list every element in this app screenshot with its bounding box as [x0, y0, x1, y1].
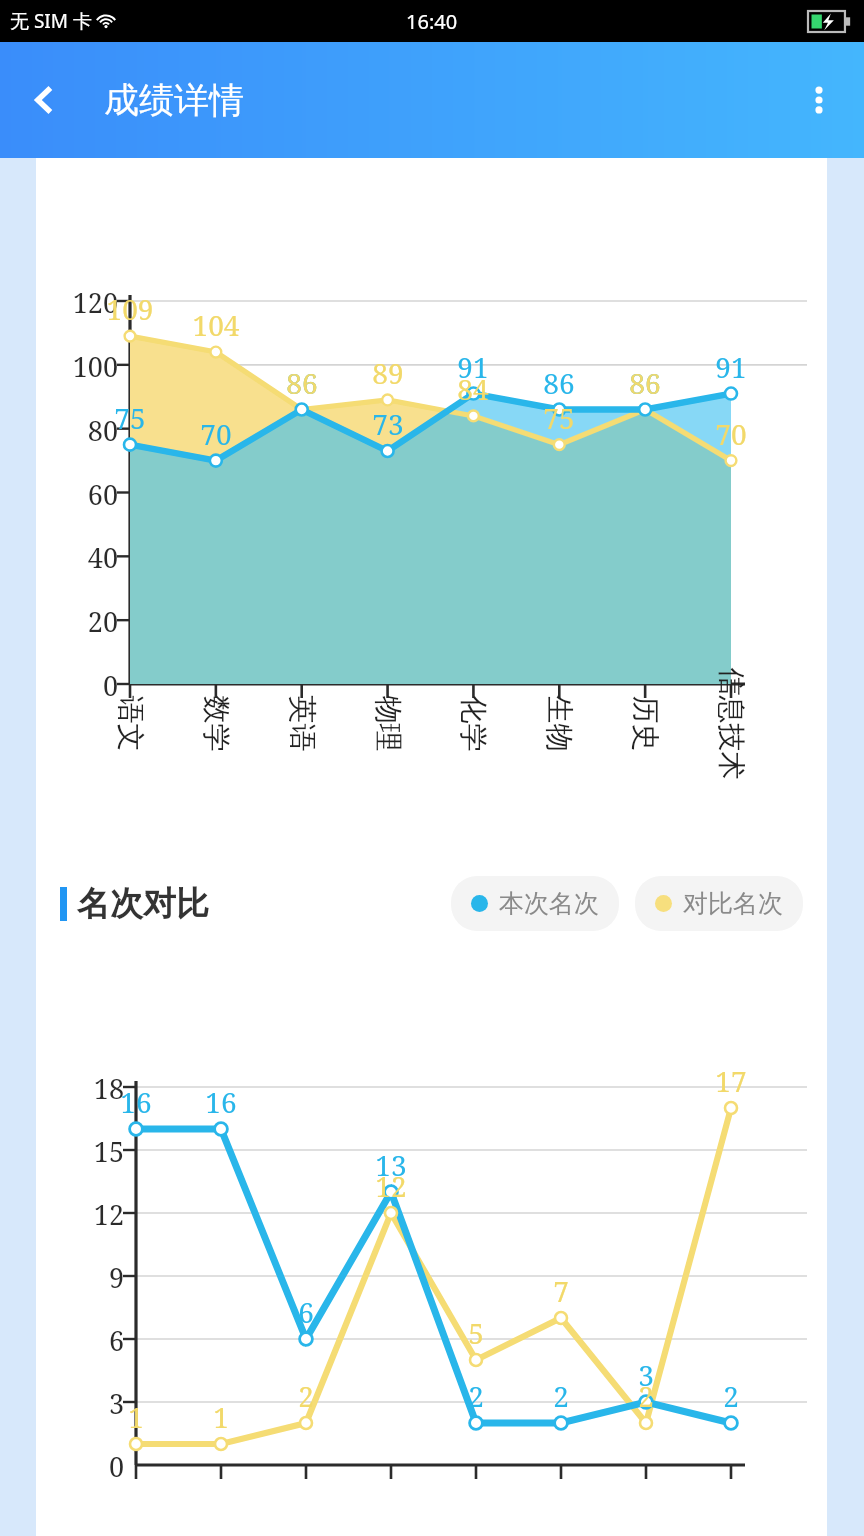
button[interactable]: More options	[788, 69, 850, 131]
button[interactable]: 对比名次	[635, 876, 803, 931]
staticText: 0	[60, 1448, 124, 1485]
staticText: 91	[443, 348, 503, 386]
staticText: 6	[276, 1293, 336, 1331]
staticText: 12	[60, 1196, 124, 1233]
staticText: 89	[358, 354, 418, 392]
staticText: 18	[60, 1070, 124, 1107]
staticText: 对比名次	[683, 888, 783, 919]
staticText: 100	[56, 348, 118, 385]
staticText: 本次名次	[499, 888, 599, 919]
staticText: 2	[446, 1377, 506, 1415]
staticText: 名次对比	[77, 883, 209, 925]
staticText: 信息技术	[713, 667, 748, 779]
staticText: 0	[56, 667, 118, 704]
staticText: 70	[186, 415, 246, 453]
staticText: 17	[701, 1062, 761, 1100]
staticText: 120	[56, 284, 118, 321]
staticText: 73	[358, 405, 418, 443]
staticText: 15	[60, 1133, 124, 1170]
staticText: 60	[56, 476, 118, 513]
staticText: 86	[529, 364, 589, 402]
staticText: 12	[361, 1167, 421, 1205]
staticText: 86	[615, 364, 675, 402]
staticText: 历史	[627, 695, 662, 751]
staticText: 109	[100, 290, 160, 328]
staticText: 70	[701, 415, 761, 453]
staticText: 104	[186, 306, 246, 344]
staticText: 86	[272, 364, 332, 402]
staticText: 75	[529, 399, 589, 437]
staticText: 3	[60, 1385, 124, 1422]
staticText: 13	[361, 1146, 421, 1184]
staticText: 数学	[198, 695, 233, 751]
staticText: 6	[60, 1322, 124, 1359]
staticText: 化学	[455, 695, 490, 751]
staticText: 9	[60, 1259, 124, 1296]
staticText: 86	[272, 364, 332, 402]
staticText: 75	[100, 399, 160, 437]
staticText: 语文	[112, 695, 147, 751]
staticText: 20	[56, 603, 118, 640]
staticText: 7	[531, 1272, 591, 1310]
staticText: 2	[616, 1377, 676, 1415]
staticText: 物理	[370, 695, 405, 751]
staticText: 5	[446, 1314, 506, 1352]
staticText: 40	[56, 539, 118, 576]
staticText: 2	[531, 1377, 591, 1415]
staticText: 16:40	[406, 8, 458, 35]
staticText: 2	[701, 1377, 761, 1415]
staticText: 80	[56, 412, 118, 449]
staticText: 无 SIM 卡	[10, 8, 92, 34]
staticText: 成绩详情	[104, 78, 244, 122]
staticText: 1	[191, 1398, 251, 1436]
staticText: 2	[276, 1377, 336, 1415]
staticText: 84	[443, 370, 503, 408]
staticText: 英语	[284, 695, 319, 751]
staticText: 生物	[541, 695, 576, 751]
staticText: 1	[106, 1398, 166, 1436]
staticText: 16	[191, 1083, 251, 1121]
staticText: 91	[701, 348, 761, 386]
button[interactable]: Back	[14, 69, 76, 131]
staticText: 3	[616, 1356, 676, 1394]
staticText: 86	[615, 364, 675, 402]
button[interactable]: 本次名次	[451, 876, 619, 931]
staticText: 16	[106, 1083, 166, 1121]
